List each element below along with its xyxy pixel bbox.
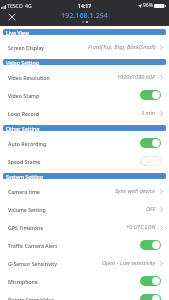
button[interactable]: On	[140, 294, 161, 300]
staticText: Microphone	[8, 278, 38, 285]
staticText: Traffic Camera Alert	[8, 242, 58, 249]
staticText: Loop Record	[8, 110, 39, 117]
button[interactable]: Rotate Front Video	[0, 290, 169, 300]
staticText: 192.168.1.254	[61, 10, 108, 20]
staticText: GPS Timezone	[8, 224, 44, 231]
staticText: Video Resolution	[8, 74, 50, 81]
button[interactable]: Close	[9, 14, 15, 20]
staticText: Open - Low sensitivity	[102, 259, 156, 267]
button[interactable]: On	[140, 90, 161, 100]
staticText: Live View	[6, 29, 29, 35]
staticText: G-Sensor Sensitivity	[8, 260, 58, 267]
staticText: Volume Setting	[8, 206, 46, 213]
button[interactable]: Video Stamp	[0, 86, 169, 104]
button[interactable]: Microphone	[0, 272, 169, 290]
staticText: TESCO	[7, 2, 23, 9]
staticText: Screen Display	[8, 44, 45, 51]
staticText: 3 min	[141, 109, 156, 117]
button[interactable]: Auto Recording	[0, 134, 169, 152]
staticText: Other Setting	[6, 125, 40, 131]
button[interactable]: Speed Stamp	[0, 152, 169, 170]
button[interactable]: Traffic Camera Alert	[0, 236, 169, 254]
button[interactable]: On	[140, 240, 161, 250]
button[interactable]: Loop Record	[0, 104, 169, 122]
staticText: Video Setting	[6, 59, 39, 65]
button[interactable]: Off	[140, 156, 161, 166]
staticText: Front(Top, Big), Back(Small)	[88, 43, 156, 51]
button[interactable]: GPS Timezone	[0, 218, 169, 236]
staticText: 1920x1080 60P	[117, 73, 156, 81]
button[interactable]: G-Sensor Sensitivity	[0, 254, 169, 272]
staticText: +0 UTC,LON	[126, 223, 156, 231]
button[interactable]: Camera time	[0, 182, 169, 200]
button[interactable]: Volume Setting	[0, 200, 169, 218]
staticText: 96%	[143, 2, 153, 9]
staticText: Rotate Front Video	[8, 296, 55, 300]
button[interactable]: Video Resolution	[0, 68, 169, 86]
button[interactable]: Screen Display	[0, 38, 169, 56]
staticText: OFF	[146, 205, 156, 213]
staticText: 4G	[25, 2, 32, 9]
staticText: Sync with device	[115, 187, 156, 195]
button[interactable]: On	[140, 138, 161, 148]
staticText: System Setting	[6, 173, 44, 179]
staticText: Auto Recording	[8, 140, 47, 147]
button[interactable]: On	[140, 276, 161, 286]
staticText: Speed Stamp	[8, 158, 41, 165]
staticText: Video Stamp	[8, 92, 40, 99]
staticText: Camera time	[8, 188, 40, 195]
staticText: 14:17	[78, 2, 92, 9]
